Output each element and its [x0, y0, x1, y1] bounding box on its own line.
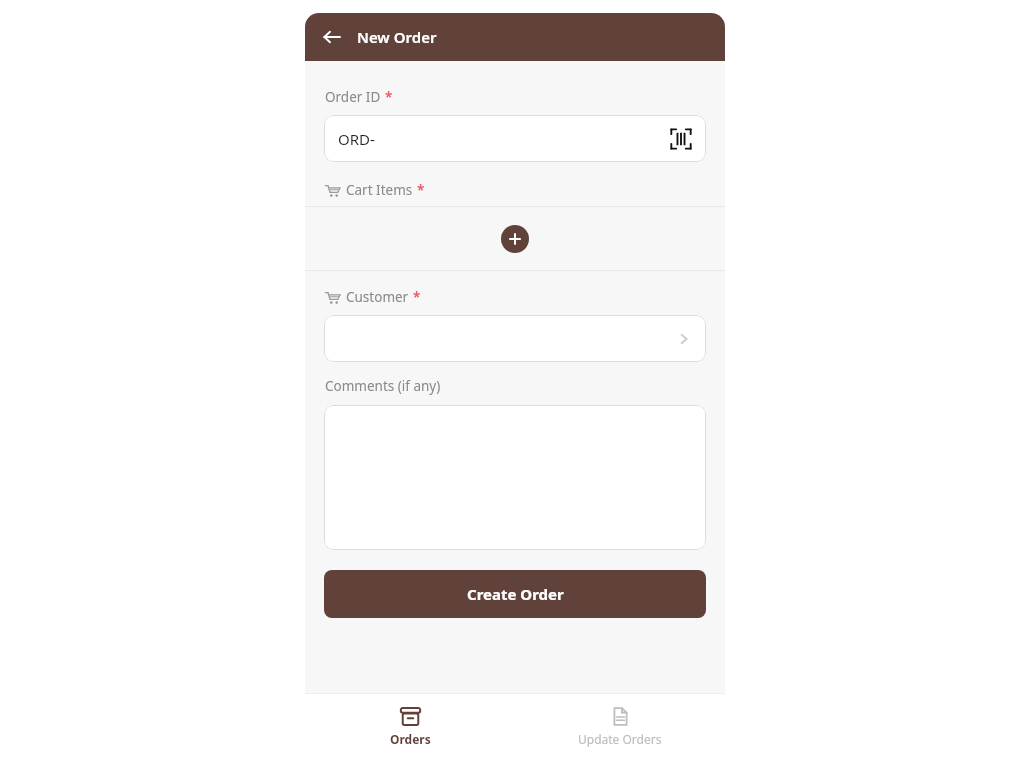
staticText: Customer [346, 288, 409, 306]
staticText: * [413, 288, 421, 306]
button[interactable]: Add cart item [501, 225, 529, 253]
button[interactable]: Create Order [324, 570, 706, 618]
staticText: ORD- [338, 129, 375, 149]
staticText: Update Orders [578, 731, 662, 747]
button[interactable]: Select customer [324, 315, 706, 362]
staticText: Order ID [325, 88, 381, 106]
staticText: Cart Items [346, 181, 413, 199]
staticText: Comments (if any) [325, 377, 441, 395]
staticText: Create Order [467, 584, 564, 604]
button[interactable]: Scan barcode [667, 125, 695, 153]
staticText: * [417, 181, 425, 199]
staticText: New Order [357, 27, 437, 47]
button[interactable]: Back [315, 20, 349, 54]
staticText: * [385, 88, 393, 106]
button[interactable]: Update Orders [515, 706, 725, 747]
button[interactable]: ORD- [324, 115, 706, 162]
button[interactable] [324, 405, 706, 550]
staticText: Orders [390, 731, 431, 747]
button[interactable]: Orders [305, 706, 515, 747]
